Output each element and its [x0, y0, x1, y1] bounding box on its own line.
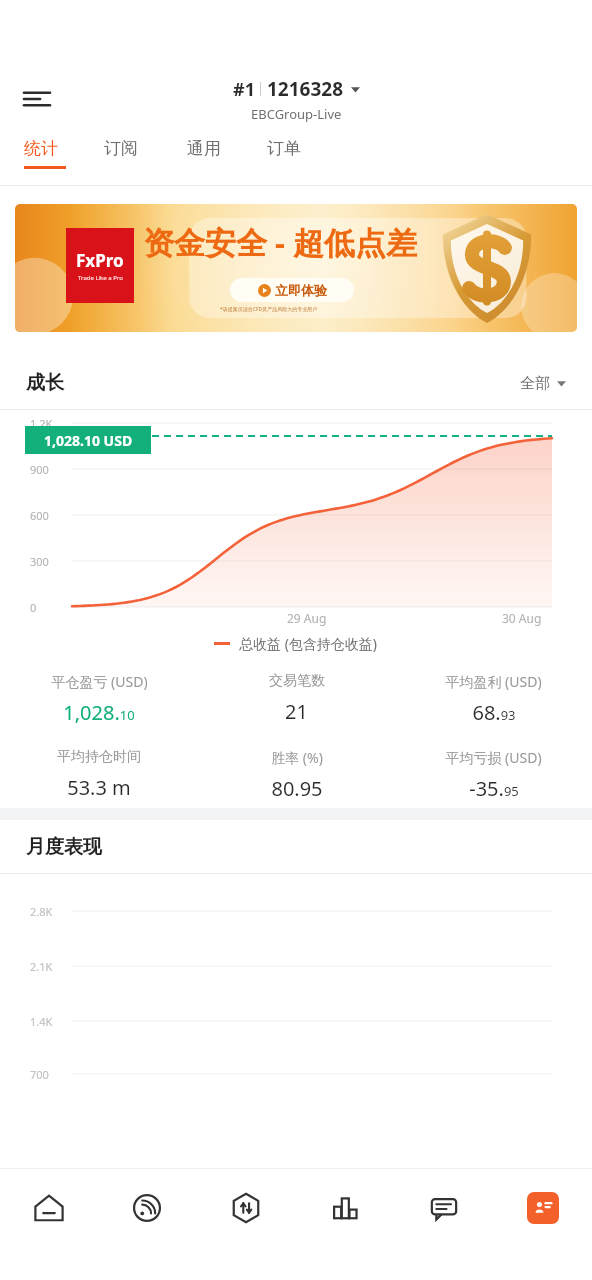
staticText: 80.95 — [271, 775, 323, 802]
staticText: 平仓盈亏 (USD) — [51, 672, 148, 691]
button[interactable]: Messages — [394, 1169, 493, 1247]
staticText: 订单 — [267, 138, 301, 159]
button[interactable]: 订单 — [259, 138, 319, 186]
button[interactable]: Signals — [98, 1169, 196, 1247]
button[interactable]: 平仓盈亏 (USD) — [0, 672, 198, 726]
staticText: 1216328 — [267, 76, 344, 102]
staticText: 统计 — [24, 138, 58, 159]
staticText: 平均持仓时间 — [57, 748, 141, 766]
staticText: 平均盈利 (USD) — [445, 672, 542, 691]
staticText: FxPro — [76, 249, 124, 272]
button[interactable]: Profile — [493, 1169, 592, 1247]
staticText: 全部 — [520, 374, 550, 393]
button[interactable]: Menu — [14, 76, 60, 122]
staticText: 29 Aug — [287, 610, 327, 626]
button[interactable]: #1 — [233, 76, 360, 123]
staticText: 53.3 m — [67, 774, 131, 801]
staticText: 2.1K — [30, 959, 53, 974]
button[interactable]: 交易笔数 — [198, 672, 395, 725]
staticText: 900 — [30, 462, 49, 477]
button[interactable]: 平均盈利 (USD) — [395, 672, 592, 726]
staticText: 0 — [30, 600, 37, 615]
button[interactable]: 胜率 (%) — [198, 748, 395, 802]
staticText: 月度表现 — [26, 835, 102, 859]
staticText: 1,028.10 USD — [44, 431, 133, 450]
staticText: 1,028.10 — [63, 699, 135, 726]
staticText: 30 Aug — [502, 610, 542, 626]
staticText: -35.95 — [469, 775, 519, 802]
button[interactable]: Home — [0, 1169, 98, 1247]
staticText: 通用 — [187, 138, 221, 159]
staticText: 600 — [30, 508, 49, 523]
button[interactable]: 全部 — [514, 368, 572, 399]
staticText: 1.2K — [30, 416, 53, 431]
staticText: 成长 — [26, 371, 64, 395]
staticText: 1.4K — [30, 1014, 53, 1029]
staticText: 68.93 — [472, 699, 516, 726]
button[interactable]: Trade — [196, 1169, 295, 1247]
button[interactable]: 平均持仓时间 — [0, 748, 198, 801]
staticText: *该提案仅适合CFD及产品风险大的专业用户 — [220, 306, 318, 313]
staticText: 订阅 — [104, 138, 138, 159]
staticText: 21 — [285, 698, 308, 725]
staticText: 2.8K — [30, 904, 53, 919]
button[interactable]: 统计 — [16, 138, 76, 186]
button[interactable]: 平均亏损 (USD) — [395, 748, 592, 802]
button[interactable]: 通用 — [179, 138, 239, 186]
staticText: 交易笔数 — [269, 672, 325, 690]
staticText: #1 — [233, 77, 255, 102]
staticText: 资金安全 - 超低点差 — [143, 221, 418, 263]
button[interactable]: Statistics — [295, 1169, 394, 1247]
staticText: 胜率 (%) — [271, 748, 323, 767]
staticText: 平均亏损 (USD) — [445, 748, 542, 767]
staticText: 700 — [30, 1067, 49, 1082]
button[interactable]: FxPro — [15, 204, 577, 332]
staticText: EBCGroup-Live — [251, 105, 342, 123]
staticText: Trade Like a Pro — [78, 274, 123, 282]
staticText: 总收益 (包含持仓收益) — [239, 634, 378, 653]
staticText: 300 — [30, 554, 49, 569]
staticText: 立即体验 — [275, 282, 327, 298]
button[interactable]: 订阅 — [96, 138, 156, 186]
